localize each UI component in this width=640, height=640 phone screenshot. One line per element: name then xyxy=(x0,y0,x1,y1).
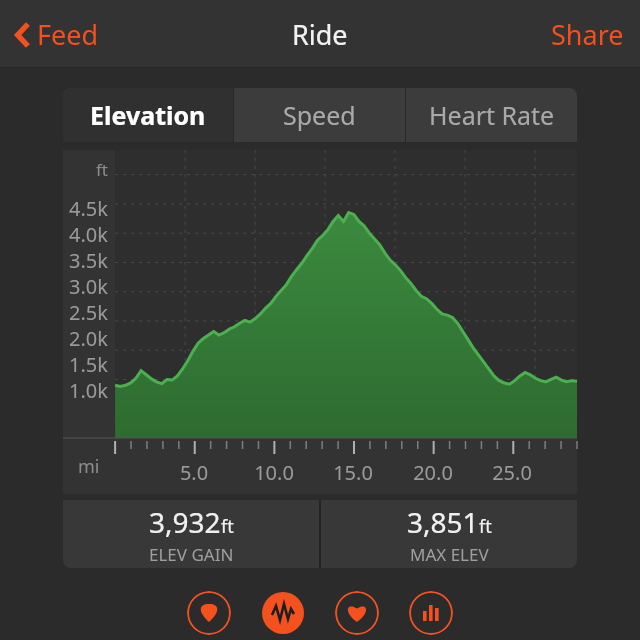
staticText: 3,851 xyxy=(407,503,479,541)
staticText: Feed xyxy=(37,16,99,53)
staticText: mi xyxy=(78,454,100,479)
staticText: 4.5k xyxy=(69,195,108,221)
staticText: 1.0k xyxy=(69,377,108,403)
button[interactable]: Stats xyxy=(409,591,453,635)
staticText: Speed xyxy=(283,98,356,132)
button[interactable]: Speed xyxy=(234,88,405,142)
staticText: ft xyxy=(63,158,108,181)
staticText: Elevation xyxy=(90,98,206,132)
staticText: 3.5k xyxy=(69,247,108,273)
staticText: 1.5k xyxy=(69,351,108,377)
button[interactable]: Map xyxy=(187,591,231,635)
staticText: MAX ELEV xyxy=(410,543,489,566)
staticText: 20.0 xyxy=(407,459,459,486)
button[interactable]: Activity xyxy=(261,591,305,635)
button[interactable]: Share xyxy=(535,8,640,61)
staticText: ft xyxy=(479,514,492,539)
staticText: ELEV GAIN xyxy=(149,543,234,566)
staticText: ft xyxy=(221,514,234,539)
staticText: 4.0k xyxy=(69,221,108,247)
staticText: 3.0k xyxy=(69,273,108,299)
button[interactable]: Feed xyxy=(0,8,111,61)
button[interactable]: Heart Rate xyxy=(335,591,379,635)
button[interactable]: Elevation xyxy=(63,88,233,142)
staticText: 10.0 xyxy=(248,459,300,486)
staticText: 2.0k xyxy=(69,325,108,351)
staticText: 25.0 xyxy=(486,459,538,486)
staticText: 2.5k xyxy=(69,299,108,325)
button[interactable]: Heart Rate xyxy=(406,88,577,142)
staticText: Heart Rate xyxy=(429,98,555,132)
staticText: 5.0 xyxy=(168,459,220,486)
staticText: 3,932 xyxy=(149,503,221,541)
button[interactable]: 3,932 xyxy=(63,500,319,568)
staticText: 15.0 xyxy=(327,459,379,486)
button[interactable]: 3,851 xyxy=(321,500,577,568)
staticText: Ride xyxy=(292,16,348,53)
staticText: Share xyxy=(551,16,624,53)
